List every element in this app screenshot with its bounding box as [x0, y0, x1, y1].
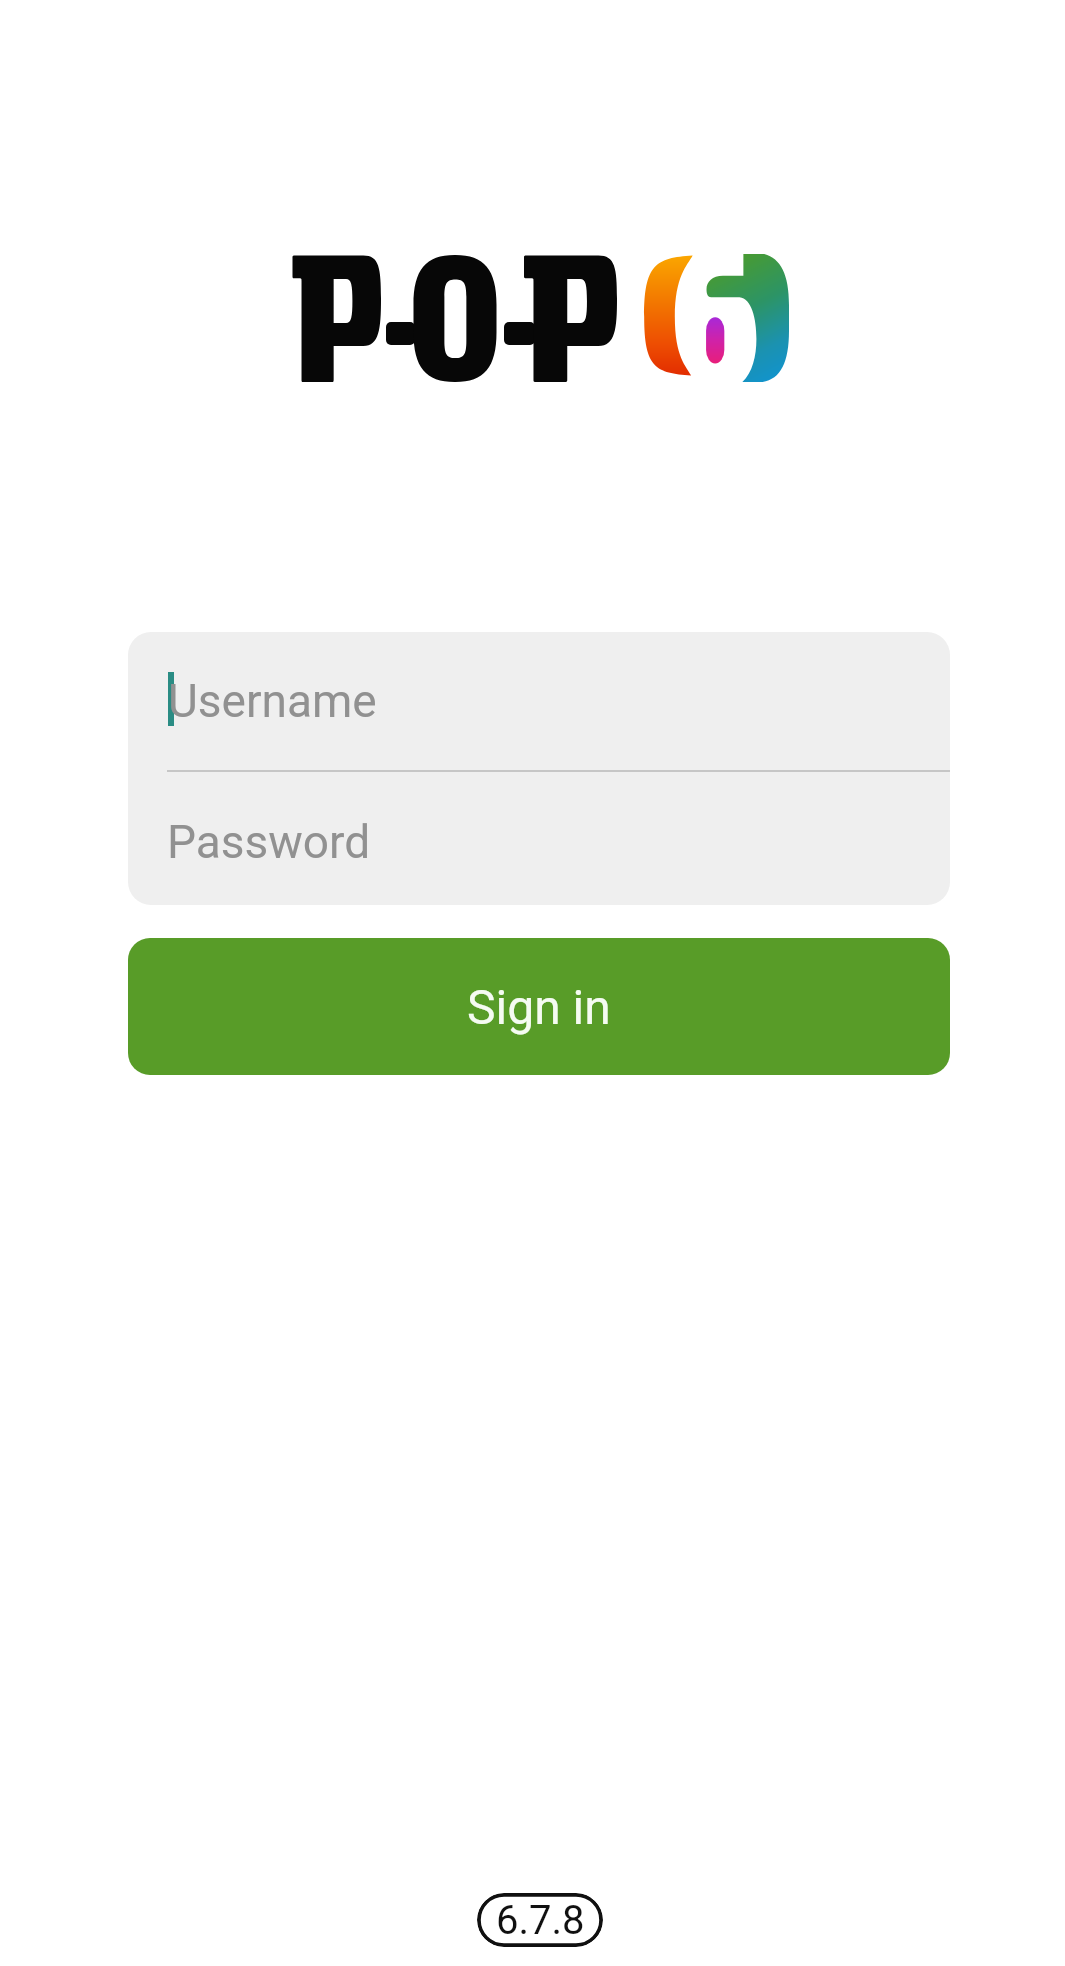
staticText: Sign in — [467, 979, 611, 1035]
button[interactable]: Sign in — [128, 938, 950, 1075]
button[interactable]: Username — [128, 632, 950, 770]
staticText: 6.7.8 — [496, 1897, 585, 1944]
button[interactable]: App version 6.7.8 — [477, 1893, 603, 1947]
button[interactable]: Password — [128, 772, 950, 905]
other: POP6 logo — [280, 245, 800, 390]
staticText: Password — [167, 815, 371, 869]
staticText: Username — [168, 674, 377, 728]
